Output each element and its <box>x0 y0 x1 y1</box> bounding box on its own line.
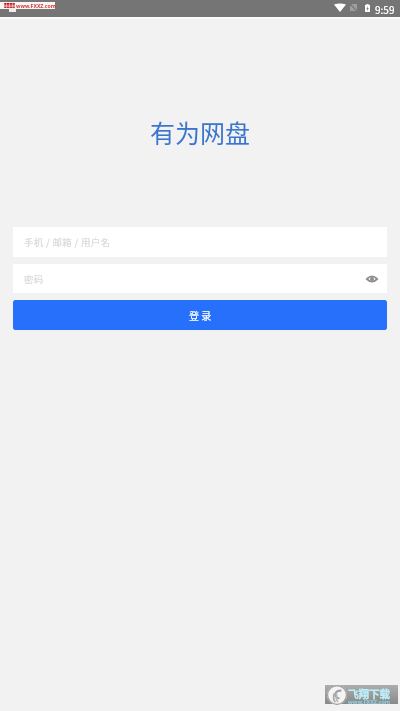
staticText: 登 录 <box>189 308 212 322</box>
button[interactable]: 登 录 <box>13 300 387 330</box>
button[interactable]: Show password <box>357 264 387 293</box>
staticText: 9:59 <box>375 2 395 16</box>
staticText: 有为网盘 <box>0 114 400 150</box>
button[interactable]: 手机 / 邮箱 / 用户名 <box>13 227 387 257</box>
staticText: www.FXXZ.com <box>16 2 56 9</box>
button[interactable]: 密码 <box>13 264 387 293</box>
staticText: 密码 <box>24 272 44 286</box>
staticText: 飞翔下载 <box>348 686 390 701</box>
staticText: 手机 / 邮箱 / 用户名 <box>24 235 111 249</box>
staticText: www.FXXZ.com <box>348 698 391 705</box>
